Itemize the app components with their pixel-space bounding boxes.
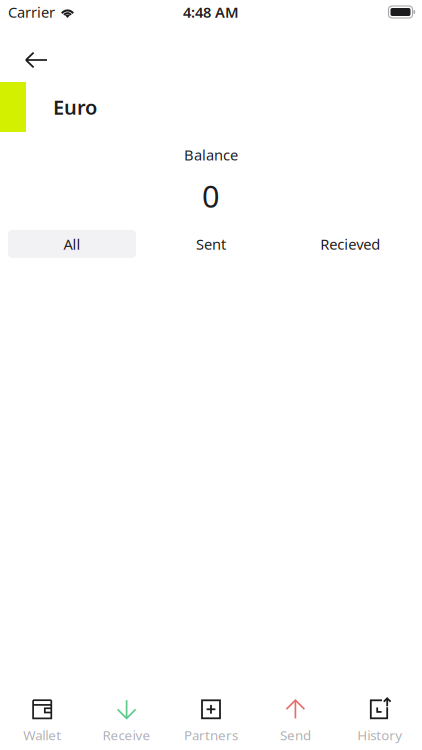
staticText: Recieved xyxy=(320,234,380,254)
staticText: Balance xyxy=(184,145,238,164)
staticText: History xyxy=(357,726,402,744)
staticText: Partners xyxy=(184,726,238,744)
staticText: Carrier xyxy=(8,2,55,22)
staticText: All xyxy=(63,234,80,254)
button[interactable]: History xyxy=(338,695,422,748)
button[interactable]: Sent xyxy=(141,226,281,262)
staticText: Receive xyxy=(103,726,151,744)
staticText: Sent xyxy=(196,234,226,254)
staticText: Euro xyxy=(53,94,97,120)
button[interactable]: Receive xyxy=(84,695,169,748)
staticText: 4:48 AM xyxy=(183,2,239,22)
button[interactable]: Back xyxy=(13,42,60,78)
staticText: Send xyxy=(280,726,311,744)
button[interactable]: All xyxy=(2,230,141,258)
staticText: Wallet xyxy=(23,726,61,744)
button[interactable]: Send xyxy=(253,695,338,748)
button[interactable]: Wallet xyxy=(0,695,84,748)
staticText: 0 xyxy=(202,175,220,216)
button[interactable]: Recieved xyxy=(281,226,420,262)
button[interactable]: Partners xyxy=(169,695,253,748)
